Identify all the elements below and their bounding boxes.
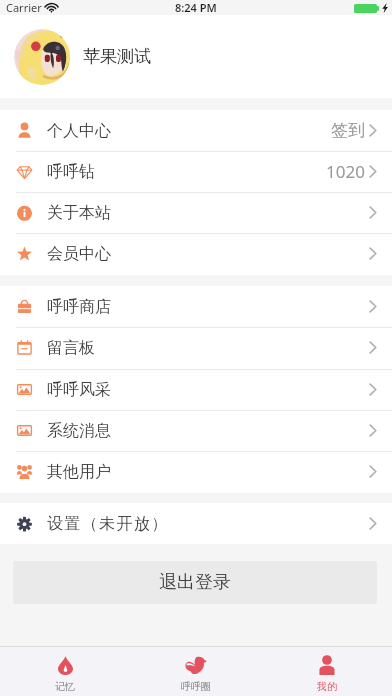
button[interactable]: 退出登录 bbox=[13, 561, 377, 604]
staticText: 关于本站 bbox=[47, 203, 111, 223]
staticText: 留言板 bbox=[47, 338, 95, 358]
staticText: 签到 bbox=[331, 120, 365, 141]
staticText: 记忆 bbox=[55, 680, 75, 693]
button[interactable]: 呼呼钻 bbox=[0, 151, 392, 192]
staticText: 1020 bbox=[326, 160, 365, 183]
staticText: 呼呼钻 bbox=[47, 162, 95, 182]
button[interactable]: 记忆 bbox=[0, 647, 130, 696]
button[interactable]: 呼呼商店 bbox=[0, 286, 392, 327]
button[interactable]: 呼呼风采 bbox=[0, 369, 392, 410]
button[interactable]: 我的 bbox=[261, 647, 392, 696]
staticText: 其他用户 bbox=[47, 462, 111, 482]
staticText: 我的 bbox=[317, 680, 337, 693]
button[interactable]: 苹果测试 bbox=[0, 15, 392, 98]
staticText: 呼呼商店 bbox=[47, 297, 111, 317]
staticText: 呼呼风采 bbox=[47, 380, 111, 400]
button[interactable]: 个人中心 bbox=[0, 110, 392, 151]
staticText: 个人中心 bbox=[47, 121, 111, 141]
staticText: 苹果测试 bbox=[83, 46, 151, 67]
button[interactable]: 留言板 bbox=[0, 327, 392, 368]
staticText: 设置（未开放） bbox=[47, 514, 169, 534]
staticText: 退出登录 bbox=[159, 571, 231, 594]
staticText: 8:24 PM bbox=[175, 0, 217, 15]
button[interactable]: 关于本站 bbox=[0, 192, 392, 233]
button[interactable]: 设置（未开放） bbox=[0, 503, 392, 544]
staticText: 呼呼圈 bbox=[181, 680, 211, 693]
staticText: Carrier bbox=[6, 0, 42, 15]
button[interactable]: 会员中心 bbox=[0, 233, 392, 274]
button[interactable]: 系统消息 bbox=[0, 410, 392, 451]
staticText: 系统消息 bbox=[47, 421, 111, 441]
button[interactable]: 呼呼圈 bbox=[130, 647, 261, 696]
button[interactable]: 其他用户 bbox=[0, 451, 392, 492]
staticText: 会员中心 bbox=[47, 244, 111, 264]
